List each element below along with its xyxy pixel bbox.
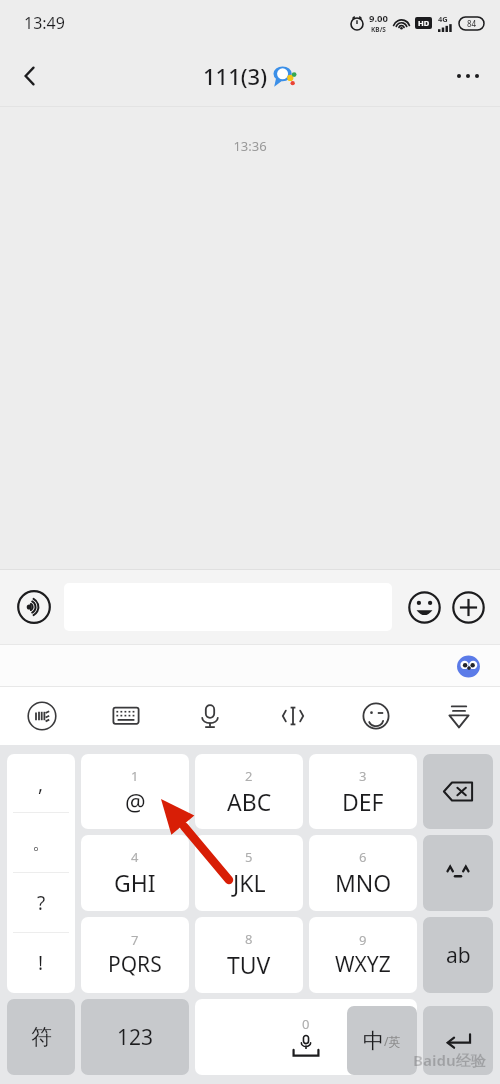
- button[interactable]: 123: [81, 999, 189, 1075]
- button[interactable]: 。: [7, 813, 75, 873]
- button[interactable]: Voice input: [12, 585, 56, 629]
- staticText: 9.00: [369, 12, 388, 25]
- button[interactable]: More functions: [448, 587, 488, 627]
- staticText: 1: [131, 767, 139, 785]
- button[interactable]: 符: [7, 999, 75, 1075]
- button[interactable]: Keyboard layout: [84, 687, 168, 745]
- staticText: 111(3): [203, 61, 268, 91]
- staticText: 符: [31, 1024, 52, 1050]
- staticText: !: [38, 950, 44, 976]
- button[interactable]: Sticker: [334, 687, 417, 745]
- staticText: 0: [302, 1015, 310, 1033]
- staticText: 7: [131, 931, 139, 949]
- staticText: WXYZ: [335, 950, 391, 979]
- button[interactable]: 111(3): [203, 61, 297, 91]
- staticText: HD: [418, 18, 430, 28]
- button[interactable]: Kaomoji: [423, 835, 493, 911]
- staticText: MNO: [335, 867, 392, 898]
- button[interactable]: ?: [7, 873, 75, 933]
- staticText: KB/S: [371, 25, 386, 34]
- button[interactable]: Assistant: [452, 649, 486, 683]
- staticText: 4G: [438, 14, 448, 24]
- button[interactable]: Back: [6, 52, 54, 100]
- staticText: GHI: [114, 867, 156, 898]
- staticText: 13:36: [0, 137, 500, 155]
- staticText: 2: [245, 767, 253, 785]
- staticText: 13:49: [24, 12, 65, 34]
- button[interactable]: 6: [309, 835, 417, 911]
- button[interactable]: Emoji: [404, 587, 444, 627]
- staticText: 6: [359, 848, 367, 866]
- staticText: ,: [38, 771, 44, 797]
- staticText: 中: [363, 1028, 384, 1054]
- staticText: 8: [245, 930, 253, 948]
- staticText: ab: [446, 941, 471, 970]
- button[interactable]: 中: [347, 1006, 417, 1075]
- button[interactable]: Enter: [423, 1006, 493, 1075]
- staticText: 4: [131, 848, 139, 866]
- staticText: @: [125, 786, 146, 817]
- button[interactable]: 5: [195, 835, 303, 911]
- button[interactable]: 4: [81, 835, 189, 911]
- button[interactable]: 1: [81, 754, 189, 829]
- staticText: 9: [359, 931, 367, 949]
- button[interactable]: 3: [309, 754, 417, 829]
- button[interactable]: More options: [444, 52, 492, 100]
- button[interactable]: ab: [423, 917, 493, 993]
- button[interactable]: Voice: [168, 687, 251, 745]
- button[interactable]: 9: [309, 917, 417, 993]
- staticText: ?: [37, 890, 46, 916]
- staticText: 123: [117, 1023, 154, 1052]
- staticText: PQRS: [108, 950, 162, 979]
- staticText: /英: [384, 1033, 401, 1049]
- button[interactable]: Delete: [423, 754, 493, 829]
- button[interactable]: ,: [7, 754, 75, 813]
- staticText: 84: [467, 18, 477, 29]
- staticText: 。: [32, 831, 51, 855]
- button[interactable]: Input method: [0, 687, 84, 745]
- staticText: Baidu经验: [413, 1050, 486, 1070]
- staticText: TUV: [227, 949, 271, 980]
- staticText: 3: [359, 767, 367, 785]
- staticText: ABC: [227, 786, 272, 817]
- button[interactable]: 8: [195, 917, 303, 993]
- button[interactable]: 2: [195, 754, 303, 829]
- button[interactable]: Edit cursor: [251, 687, 334, 745]
- button[interactable]: !: [7, 933, 75, 993]
- button[interactable]: Hide keyboard: [417, 687, 500, 745]
- button[interactable]: 7: [81, 917, 189, 993]
- button[interactable]: Space: [195, 999, 417, 1075]
- staticText: 5: [245, 848, 253, 866]
- staticText: JKL: [233, 867, 266, 898]
- staticText: DEF: [342, 786, 384, 817]
